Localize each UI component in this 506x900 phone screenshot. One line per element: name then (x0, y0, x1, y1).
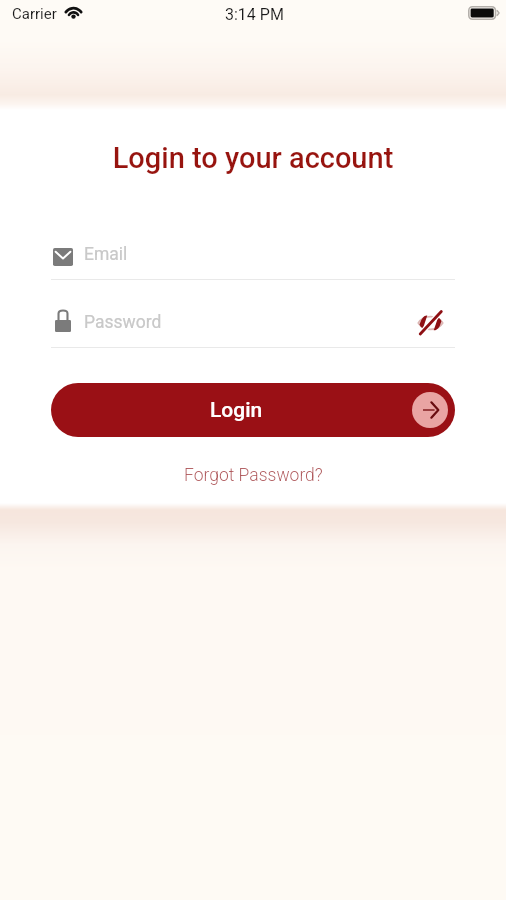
button[interactable]: Email (51, 234, 455, 280)
button[interactable]: Toggle password visibility (411, 303, 449, 341)
staticText: Email (84, 244, 128, 265)
button[interactable]: Login (51, 383, 455, 437)
staticText: Login (210, 398, 263, 423)
staticText: Login to your account (51, 141, 455, 175)
button[interactable]: Forgot Password? (180, 463, 327, 488)
staticText: Forgot Password? (184, 465, 323, 486)
staticText: 3:14 PM (225, 5, 284, 24)
button[interactable]: Password (51, 302, 455, 348)
staticText: Carrier (12, 5, 57, 23)
other: Continue (412, 392, 448, 428)
staticText: Password (84, 312, 162, 333)
